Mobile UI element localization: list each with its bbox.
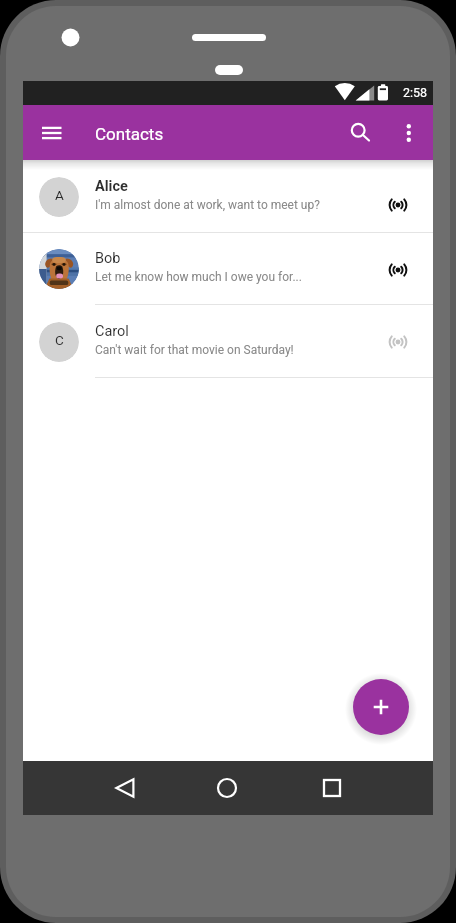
staticText: Let me know how much I owe you for...	[95, 270, 302, 284]
button[interactable]: Add contact	[353, 679, 409, 735]
staticText: Can't wait for that movie on Saturday!	[95, 343, 294, 357]
button[interactable]: Call	[382, 254, 414, 286]
button[interactable]: More options	[389, 110, 429, 150]
staticText: Contacts	[95, 124, 164, 144]
button[interactable]: C	[23, 305, 433, 378]
staticText: Alice	[95, 178, 128, 195]
staticText: I'm almost done at work, want to meet up…	[95, 198, 320, 212]
staticText: Bob	[95, 250, 121, 267]
button[interactable]: Call	[382, 189, 414, 221]
staticText: C	[55, 332, 64, 348]
button[interactable]: Recent apps	[312, 768, 352, 808]
button[interactable]: A	[23, 160, 433, 233]
staticText: Carol	[95, 323, 129, 340]
button[interactable]: Call	[382, 326, 414, 358]
button[interactable]: Open navigation drawer	[24, 113, 64, 153]
button[interactable]: Search	[338, 110, 378, 150]
button[interactable]: Bob	[23, 232, 433, 305]
staticText: 2:58	[403, 85, 428, 100]
staticText: A	[55, 187, 64, 203]
button[interactable]: Home	[207, 768, 247, 808]
button[interactable]: Back	[105, 768, 145, 808]
